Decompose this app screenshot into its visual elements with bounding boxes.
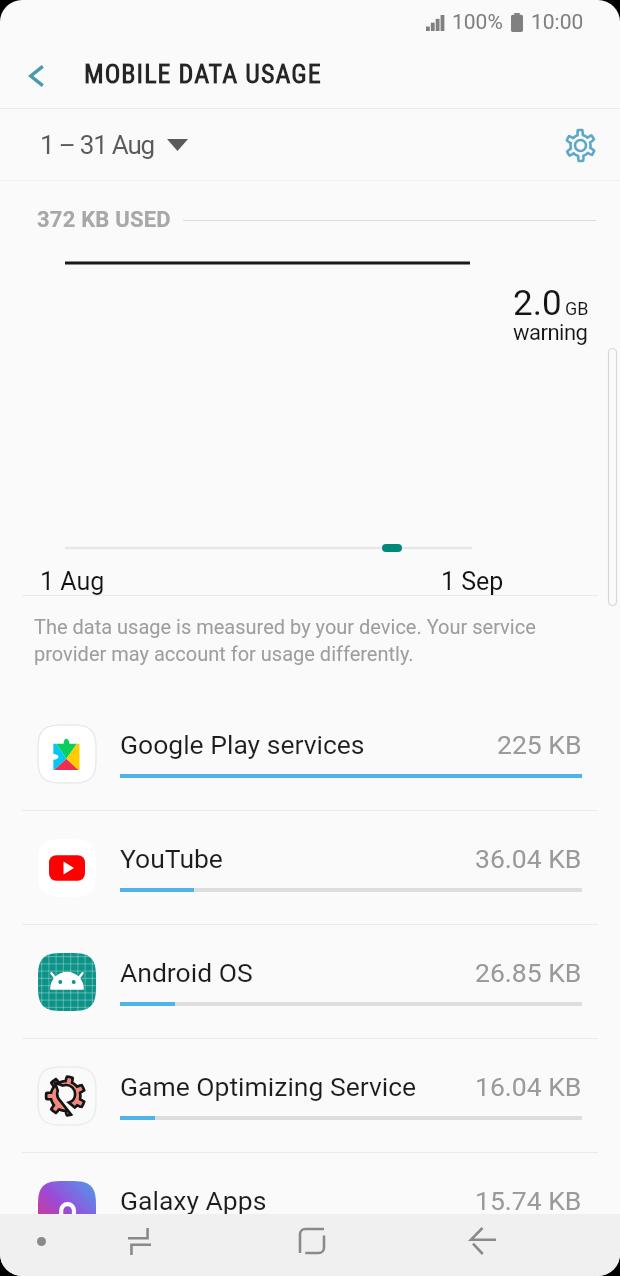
- staticText: GB: [565, 298, 589, 319]
- staticText: 2.0: [513, 283, 562, 324]
- button[interactable]: Menu indicator: [17, 1217, 65, 1265]
- staticText: The data usage is measured by your devic…: [34, 615, 590, 666]
- staticText: Android OS: [120, 957, 253, 988]
- button[interactable]: Recent apps: [115, 1217, 163, 1265]
- button[interactable]: Back: [0, 44, 84, 108]
- staticText: 1 – 31 Aug: [40, 130, 155, 160]
- staticText: Game Optimizing Service: [120, 1071, 417, 1102]
- staticText: 225 KB: [497, 729, 582, 760]
- staticText: warning: [513, 320, 588, 346]
- button[interactable]: Back: [459, 1217, 507, 1265]
- button[interactable]: YouTube: [0, 811, 620, 924]
- staticText: 1 Sep: [441, 567, 504, 596]
- staticText: MOBILE DATA USAGE: [84, 59, 322, 89]
- staticText: 16.04 KB: [475, 1071, 582, 1102]
- button[interactable]: Game Optimizing Service: [0, 1039, 620, 1152]
- button[interactable]: Home: [288, 1217, 336, 1265]
- button[interactable]: Android OS: [0, 925, 620, 1038]
- staticText: 10:00: [531, 10, 584, 35]
- staticText: 15.74 KB: [475, 1185, 582, 1216]
- staticText: 372 KB USED: [37, 207, 171, 233]
- staticText: 26.85 KB: [475, 957, 582, 988]
- staticText: 100%: [452, 10, 503, 35]
- staticText: 36.04 KB: [475, 843, 582, 874]
- staticText: 1 Aug: [40, 567, 105, 596]
- button[interactable]: 1 – 31 Aug: [30, 130, 188, 160]
- button[interactable]: Settings: [554, 119, 606, 171]
- staticText: Galaxy Apps: [120, 1185, 267, 1216]
- button[interactable]: Google Play services: [0, 697, 620, 810]
- staticText: YouTube: [120, 843, 223, 874]
- button[interactable]: Galaxy Apps: [0, 1153, 620, 1266]
- staticText: Google Play services: [120, 729, 365, 760]
